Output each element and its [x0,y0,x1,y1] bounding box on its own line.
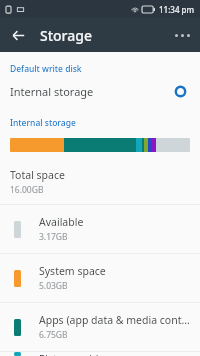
button[interactable]: Apps (app data & media content) [0,303,200,351]
staticText: Available [39,215,84,229]
button[interactable]: Back [4,21,32,49]
button[interactable]: Pictures, videos [0,352,200,356]
staticText: Default write disk [10,63,200,75]
staticText: Total space [10,168,65,182]
button[interactable]: System space [0,254,200,302]
staticText: Pictures, videos [39,352,116,356]
staticText: 6.75GB [39,329,68,341]
staticText: Apps (app data & media content) [39,313,190,327]
staticText: Internal storage [10,117,200,129]
staticText: 3.17GB [39,231,68,243]
staticText: System space [39,264,106,278]
staticText: Internal storage [10,84,175,99]
staticText: 5.03GB [39,280,68,292]
button[interactable]: Available [0,205,200,253]
button[interactable]: Total space [0,166,200,204]
staticText: 11:34 pm [159,4,195,15]
button[interactable]: More options [168,21,196,49]
staticText: Storage [40,26,92,45]
button[interactable]: Internal storage [0,78,200,104]
staticText: 16.00GB [10,184,44,196]
